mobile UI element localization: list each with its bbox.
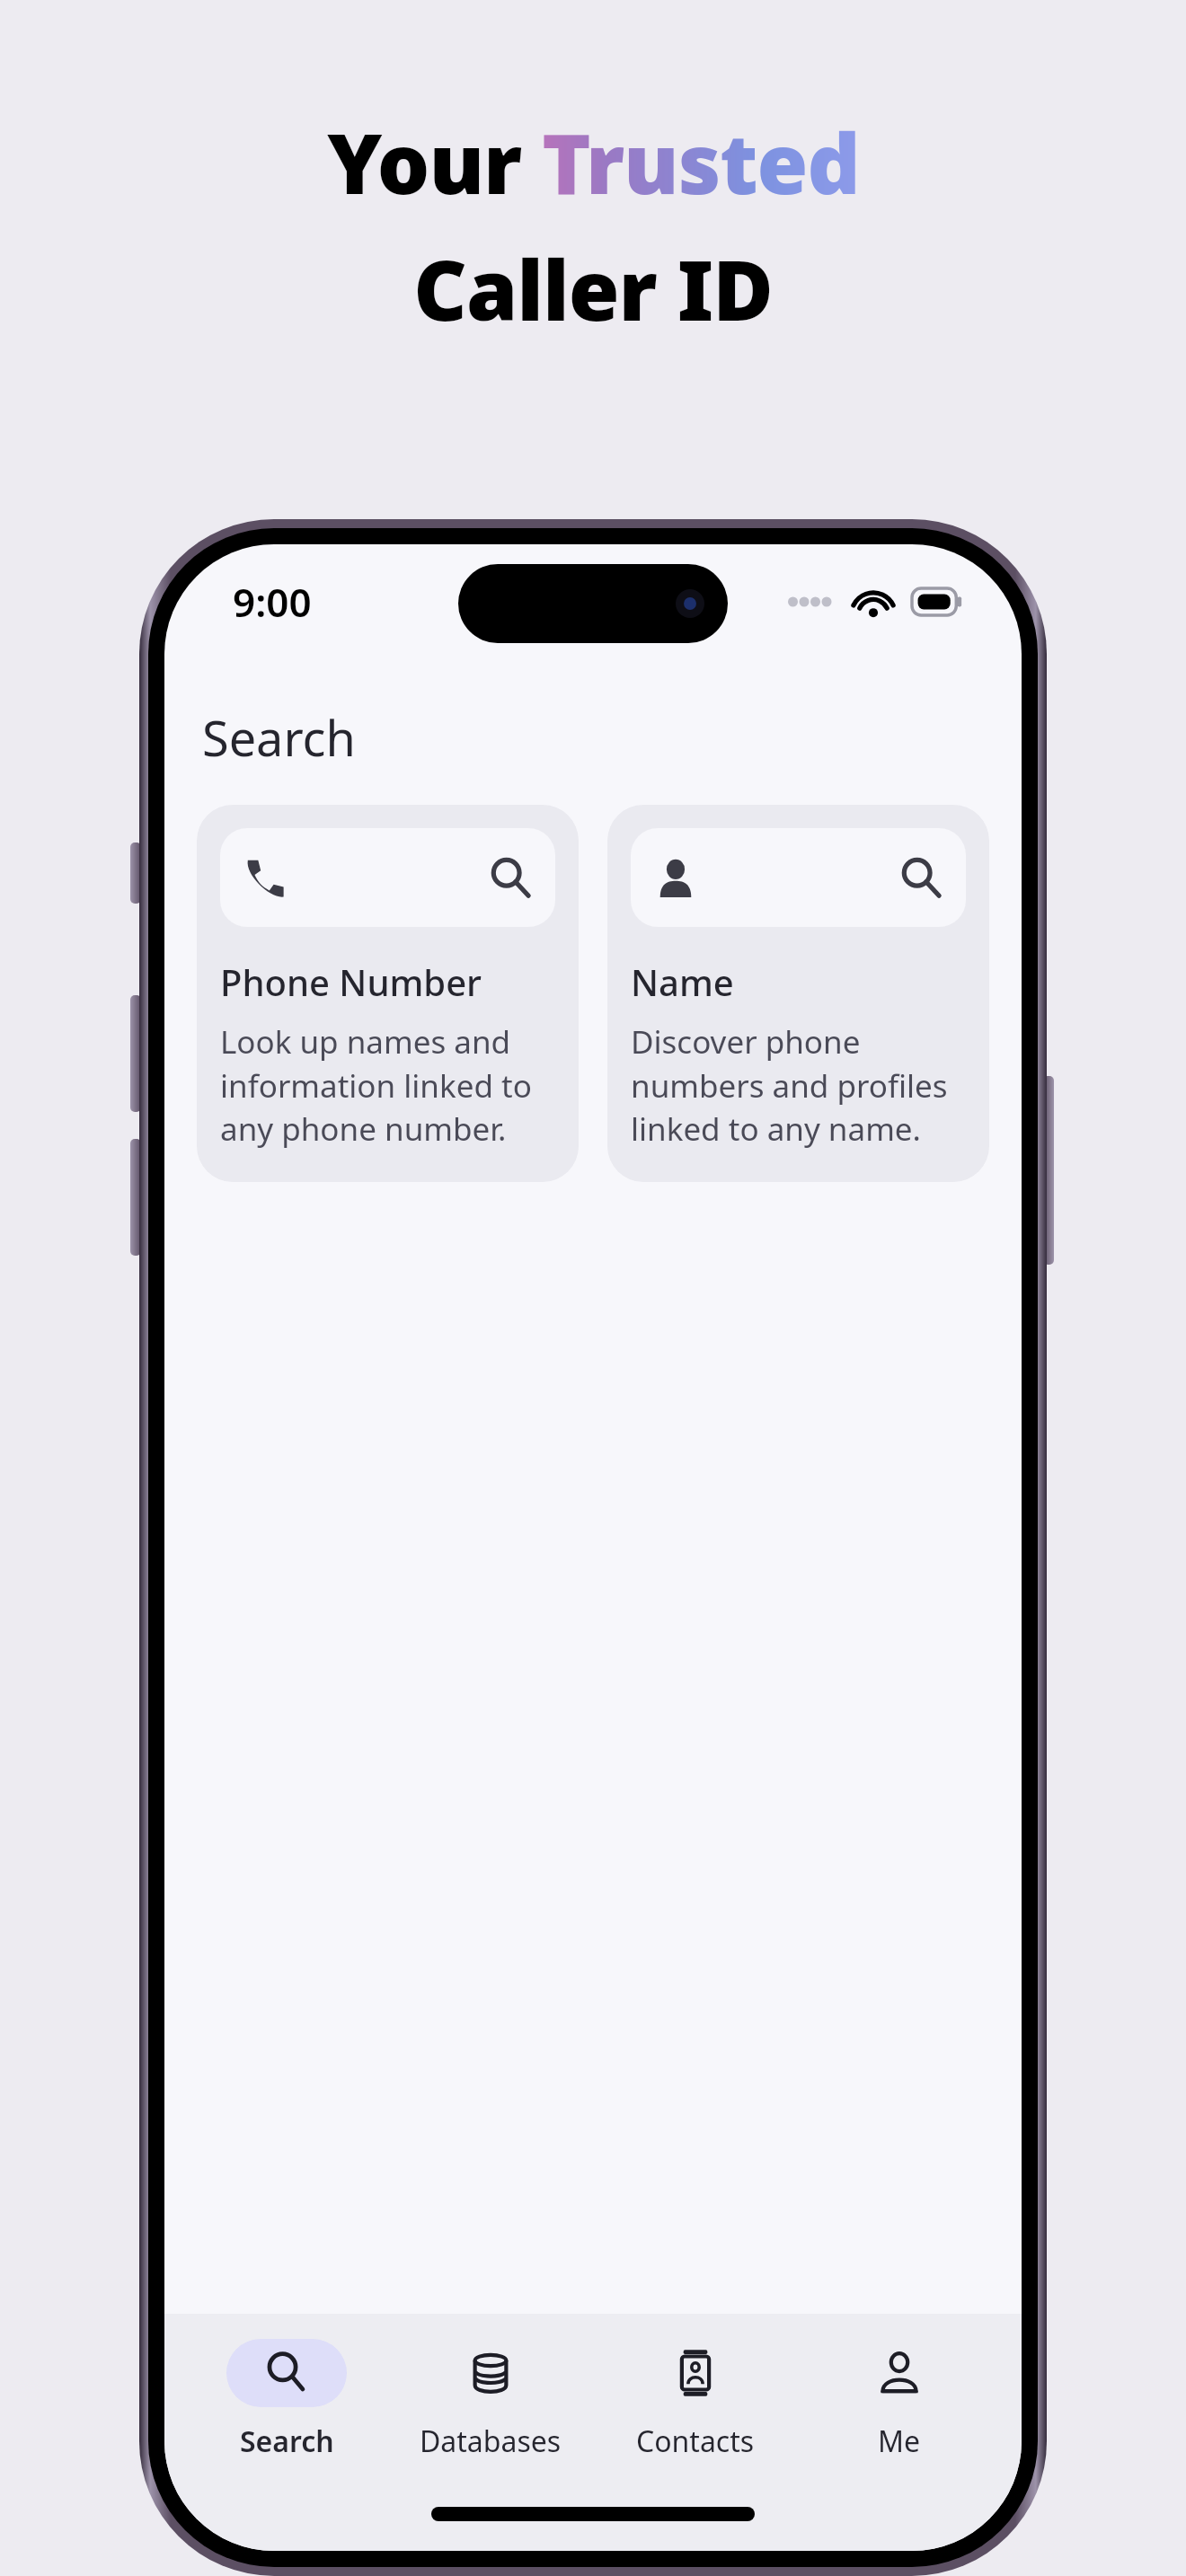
button[interactable]: Name search (631, 828, 966, 927)
staticText: Search (240, 2422, 334, 2461)
staticText: Your Trusted (327, 106, 860, 218)
button[interactable]: Phone number search (197, 805, 579, 1182)
staticText: Contacts (636, 2422, 755, 2461)
button[interactable]: Name search (607, 805, 989, 1182)
button[interactable]: Phone number search (220, 828, 555, 927)
button[interactable]: Search (192, 2335, 381, 2465)
staticText: Caller ID (413, 233, 773, 345)
staticText: Look up names and information linked to … (220, 1020, 555, 1150)
button[interactable]: Databases (396, 2335, 585, 2465)
staticText: 9:00 (233, 575, 312, 629)
staticText: Search (202, 704, 356, 771)
staticText: Me (878, 2422, 921, 2461)
staticText: Databases (420, 2422, 562, 2461)
button[interactable]: Contacts (601, 2335, 790, 2465)
staticText: Discover phone numbers and profiles link… (631, 1020, 966, 1150)
staticText: Name (631, 957, 734, 1006)
button[interactable]: Me (805, 2335, 994, 2465)
staticText: Phone Number (220, 957, 482, 1006)
